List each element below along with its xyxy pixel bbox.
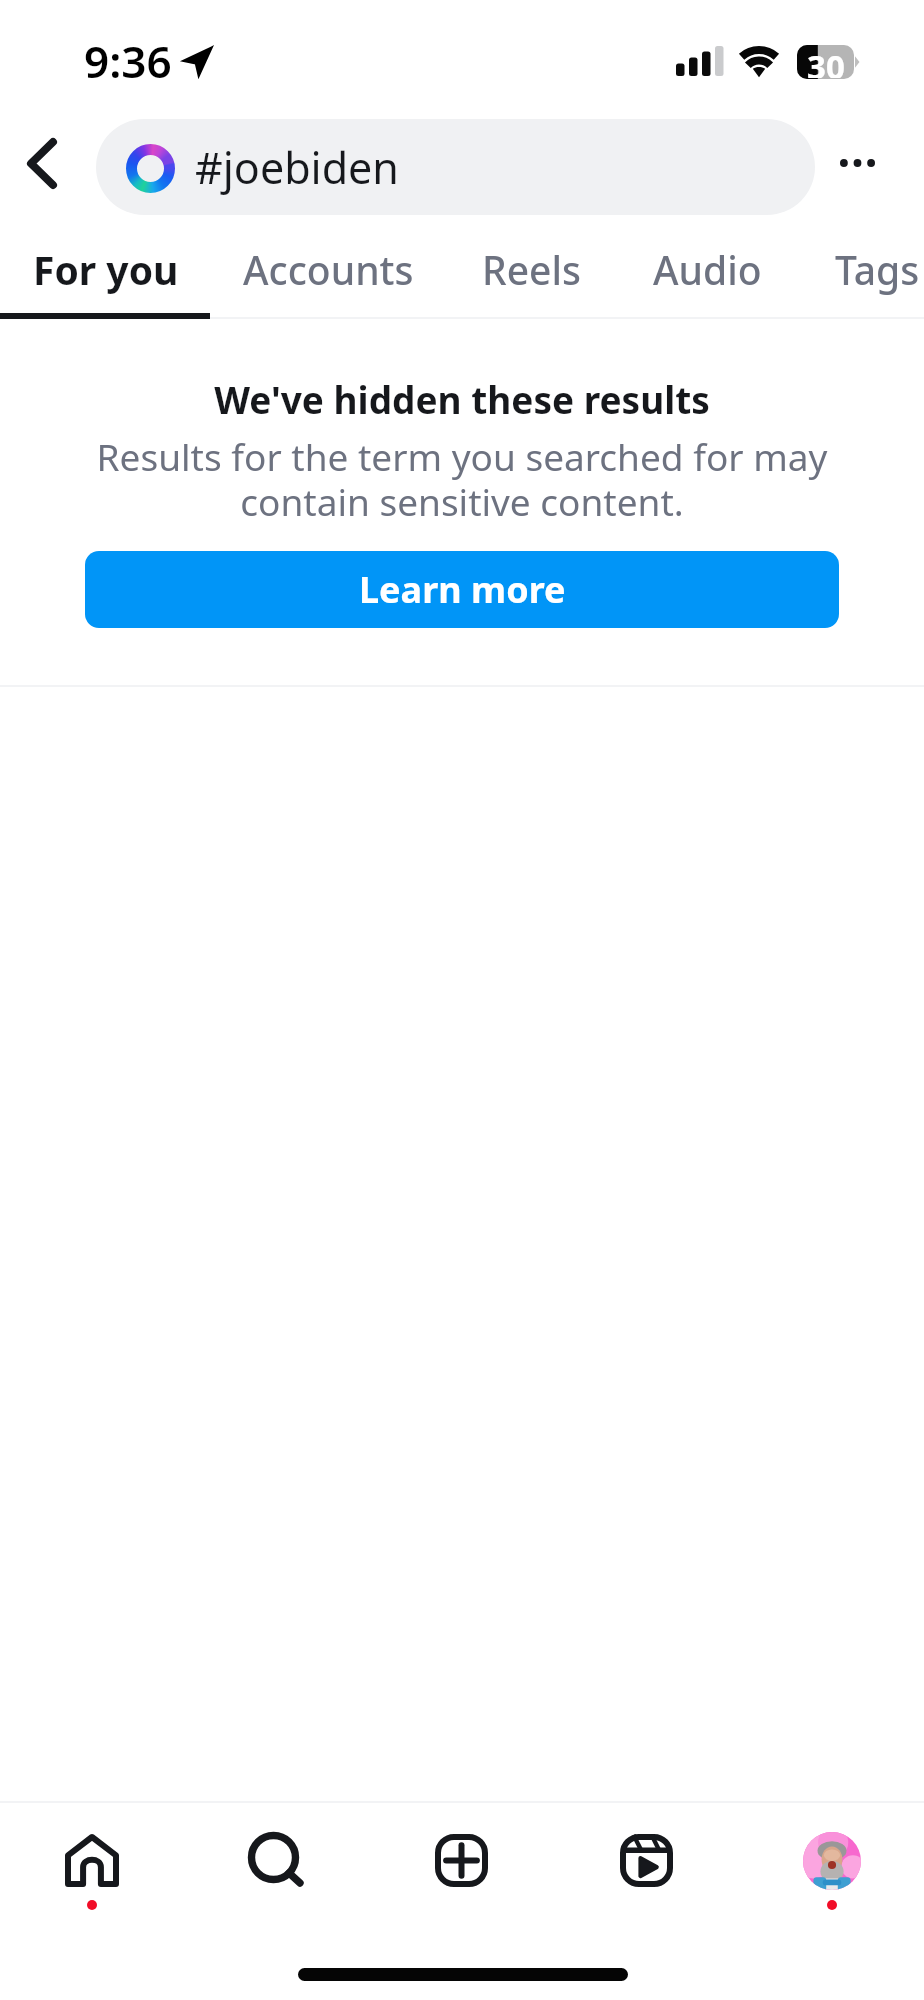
staticText: Results for the term you searched for ma… — [90, 431, 834, 527]
staticText: Learn more — [359, 565, 566, 614]
staticText: We've hidden these results — [214, 374, 710, 424]
button[interactable]: #joebiden — [96, 119, 815, 215]
staticText: Audio — [653, 243, 762, 296]
button[interactable]: Reels — [445, 221, 618, 317]
button[interactable]: Audio — [618, 221, 797, 317]
button[interactable]: More options — [803, 113, 912, 213]
button[interactable]: Tags — [783, 221, 924, 317]
button[interactable]: Create — [369, 1803, 554, 1948]
staticText: Accounts — [243, 243, 414, 296]
button[interactable]: Learn more — [85, 551, 839, 628]
button[interactable]: Accounts — [211, 221, 445, 317]
staticText: Tags — [835, 243, 920, 296]
staticText: 9:36 — [84, 31, 172, 91]
staticText: 30 — [807, 44, 845, 78]
staticText: Reels — [482, 243, 581, 296]
button[interactable]: Search — [184, 1803, 369, 1948]
staticText: For you — [33, 243, 179, 296]
button[interactable]: Back — [0, 113, 90, 213]
button[interactable]: Profile — [739, 1803, 924, 1948]
staticText: #joebiden — [195, 138, 399, 197]
button[interactable]: For you — [0, 221, 211, 317]
button[interactable]: Reels — [554, 1803, 739, 1948]
button[interactable]: Home — [0, 1803, 184, 1948]
